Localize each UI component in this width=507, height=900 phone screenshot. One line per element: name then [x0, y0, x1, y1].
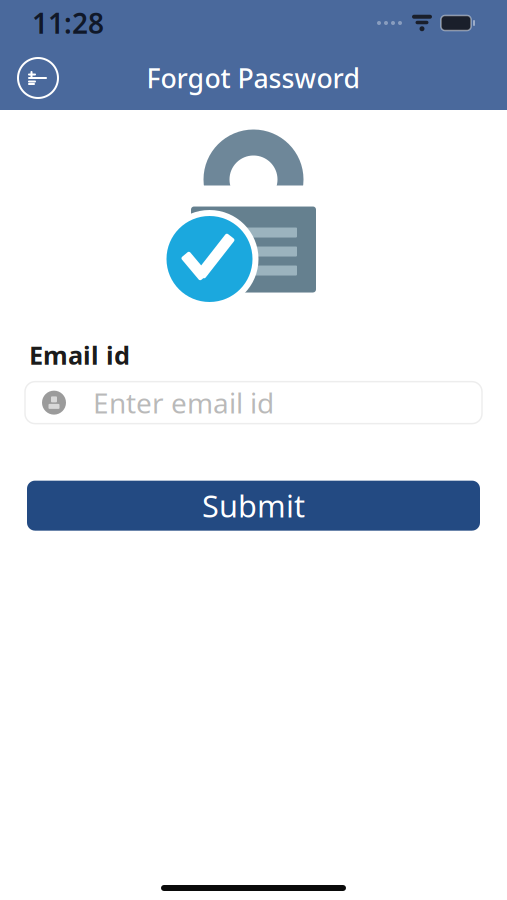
staticText: Enter email id [93, 384, 274, 421]
staticText: Forgot Password [146, 60, 360, 96]
staticText: 11:28 [32, 4, 104, 42]
staticText: Submit [202, 485, 305, 526]
button[interactable]: Back [12, 52, 64, 104]
button[interactable]: Submit [27, 481, 480, 531]
staticText: Email id [29, 338, 130, 372]
